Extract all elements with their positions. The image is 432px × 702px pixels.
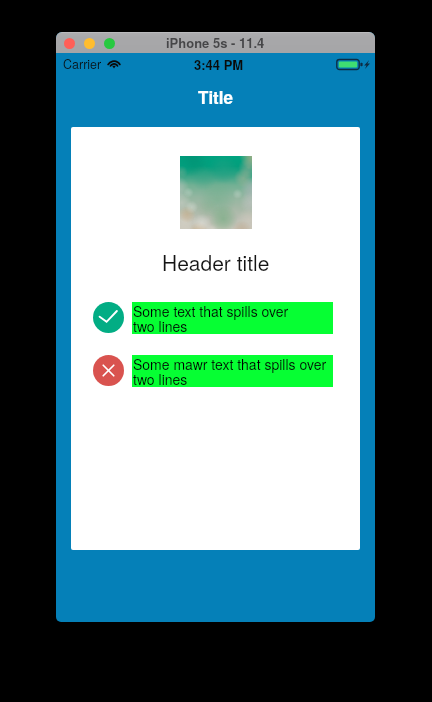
staticText: 3:44 PM [194,55,244,74]
button[interactable]: Success [93,302,124,333]
button[interactable]: Minimise [84,38,95,49]
staticText: Title [198,85,233,109]
staticText: iPhone 5s - 11.4 [166,33,265,52]
button[interactable]: Some text that spills over two lines [132,302,333,334]
staticText: Header title [162,247,270,277]
button[interactable]: Some mawr text that spills over two line… [132,355,333,387]
button[interactable]: Zoom [104,38,115,49]
staticText: Some text that spills over two lines [133,301,289,333]
button[interactable]: Error [93,355,124,386]
button[interactable]: Close [64,38,75,49]
staticText: Carrier [63,55,102,73]
staticText: Some mawr text that spills over two line… [133,354,327,386]
